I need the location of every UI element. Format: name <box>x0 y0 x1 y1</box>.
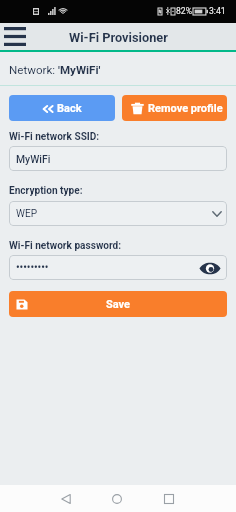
staticText: Save <box>106 298 131 311</box>
button[interactable]: Home <box>103 485 131 512</box>
staticText: Back <box>57 102 82 115</box>
button[interactable]: Back <box>9 95 115 121</box>
staticText: MyWiFi <box>16 153 51 165</box>
button[interactable]: Encryption type <box>9 201 227 226</box>
staticText: Wi-Fi network password: <box>9 240 122 252</box>
button[interactable]: Remove profile <box>122 95 227 121</box>
staticText: Encryption type: <box>9 185 83 197</box>
button[interactable]: Back <box>52 485 80 512</box>
staticText: Network: 'MyWiFi' <box>9 63 101 77</box>
staticText: ••••••••• <box>16 262 49 274</box>
staticText: 3:41 <box>209 6 226 16</box>
button[interactable]: Recents <box>155 485 183 512</box>
staticText: Remove profile <box>148 102 223 115</box>
staticText: Wi-Fi Provisioner <box>69 30 168 45</box>
button[interactable]: Menu <box>4 23 26 50</box>
button[interactable]: Save <box>9 291 227 317</box>
staticText: Wi-Fi network SSID: <box>9 131 100 143</box>
button[interactable]: Show password <box>198 257 222 279</box>
staticText: 82% <box>176 6 192 16</box>
staticText: WEP <box>16 208 38 220</box>
